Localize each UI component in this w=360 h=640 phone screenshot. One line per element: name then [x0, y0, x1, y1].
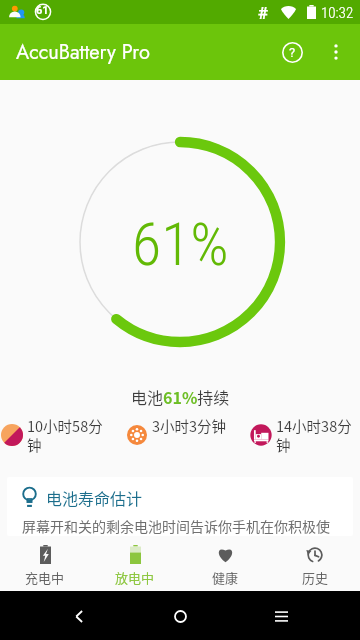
staticText: 61%: [132, 209, 229, 279]
staticText: 历史: [302, 568, 329, 587]
button[interactable]: Help: [268, 28, 316, 76]
staticText: 电池61%持续: [131, 385, 230, 408]
staticText: 10:32: [321, 4, 354, 22]
button[interactable]: Back: [57, 594, 101, 638]
staticText: 电池寿命估计: [46, 486, 143, 509]
staticText: ?: [289, 45, 296, 60]
staticText: 61: [36, 4, 49, 17]
staticText: 屏幕开和关的剩余电池时间告诉你手机在你积极使用和待机时可以持续多久。: [22, 516, 341, 536]
staticText: 健康: [212, 568, 239, 587]
button[interactable]: 历史: [270, 536, 360, 587]
button[interactable]: 充电中: [0, 536, 90, 587]
staticText: 14小时38分钟: [276, 415, 356, 455]
staticText: #: [258, 3, 269, 23]
staticText: 充电中: [25, 568, 65, 587]
button[interactable]: 电池寿命估计: [7, 477, 353, 536]
staticText: 3小时3分钟: [152, 415, 242, 436]
staticText: 放电中: [115, 568, 155, 587]
button[interactable]: 健康: [180, 536, 270, 587]
button[interactable]: 放电中: [90, 536, 180, 587]
button[interactable]: More options: [316, 32, 356, 72]
staticText: AccuBattery Pro: [16, 38, 150, 67]
button[interactable]: Recents: [259, 594, 303, 638]
staticText: 10小时58分钟: [27, 415, 107, 455]
button[interactable]: Home: [158, 594, 202, 638]
